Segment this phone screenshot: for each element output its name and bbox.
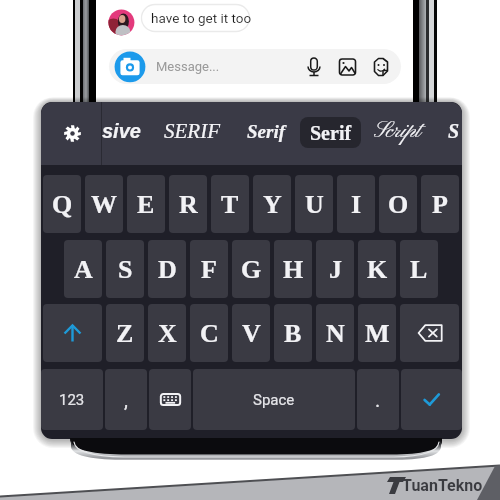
button[interactable]: V (232, 304, 270, 362)
staticText: Y (263, 190, 282, 219)
staticText: H (283, 255, 304, 284)
staticText: S (448, 120, 460, 142)
staticText: J (329, 255, 342, 284)
staticText: 123 (59, 391, 85, 409)
button[interactable]: R (169, 175, 207, 233)
staticText: W (91, 190, 117, 219)
button[interactable]: Script (374, 117, 421, 146)
button[interactable]: 123 (41, 369, 103, 430)
button[interactable]: K (358, 240, 396, 298)
staticText: Space (253, 391, 295, 409)
staticText: R (179, 190, 198, 219)
button[interactable]: A (64, 240, 102, 298)
button[interactable]: N (316, 304, 354, 362)
button[interactable]: U (295, 175, 333, 233)
staticText: D (158, 255, 177, 284)
staticText: E (137, 190, 155, 219)
button[interactable]: , (105, 369, 147, 430)
button[interactable]: Shift (43, 304, 102, 362)
staticText: L (410, 255, 428, 284)
staticText: Z (116, 319, 134, 348)
button[interactable]: M (358, 304, 396, 362)
button[interactable]: L (400, 240, 438, 298)
button[interactable]: Settings (51, 112, 93, 154)
button[interactable]: Space (193, 369, 355, 430)
staticText: M (365, 319, 390, 348)
staticText: TuanTekno (402, 476, 483, 495)
button[interactable]: Q (43, 175, 81, 233)
staticText: P (432, 190, 448, 219)
button[interactable]: S (448, 120, 460, 142)
staticText: N (326, 319, 345, 348)
staticText: , (124, 388, 128, 411)
staticText: Serif (310, 122, 352, 144)
staticText: C (200, 319, 219, 348)
button[interactable]: Switch keyboard (149, 369, 191, 430)
button[interactable]: B (274, 304, 312, 362)
button[interactable]: I (337, 175, 375, 233)
button[interactable]: Y (253, 175, 291, 233)
staticText: S (118, 255, 133, 284)
staticText: V (242, 319, 261, 348)
staticText: Serif (247, 121, 285, 142)
button[interactable]: C (190, 304, 228, 362)
button[interactable]: Backspace (400, 304, 459, 362)
button[interactable]: W (85, 175, 123, 233)
staticText: K (367, 255, 388, 284)
staticText: G (241, 255, 262, 284)
staticText: have to get it too (151, 10, 252, 26)
button[interactable]: J (316, 240, 354, 298)
button[interactable]: D (148, 240, 186, 298)
button[interactable]: T (211, 175, 249, 233)
button[interactable]: S (106, 240, 144, 298)
staticText: . (375, 388, 381, 411)
button[interactable]: Z (106, 304, 144, 362)
staticText: O (388, 190, 409, 219)
staticText: Script (374, 117, 421, 146)
staticText: Message... (156, 59, 220, 74)
staticText: U (305, 190, 324, 219)
staticText: sive (102, 120, 141, 142)
staticText: Q (52, 190, 73, 219)
button[interactable]: Serif (300, 117, 361, 148)
button[interactable]: E (127, 175, 165, 233)
button[interactable]: SERIF (164, 119, 220, 142)
button[interactable]: H (274, 240, 312, 298)
staticText: I (351, 190, 362, 219)
staticText: B (284, 319, 302, 348)
button[interactable]: X (148, 304, 186, 362)
button[interactable]: . (357, 369, 399, 430)
button[interactable]: F (190, 240, 228, 298)
staticText: X (158, 319, 177, 348)
button[interactable]: G (232, 240, 270, 298)
button[interactable]: sive (102, 120, 141, 142)
staticText: A (74, 255, 93, 284)
button[interactable]: Serif (247, 121, 285, 142)
staticText: F (201, 255, 217, 284)
button[interactable]: P (421, 175, 459, 233)
staticText: SERIF (164, 119, 220, 142)
button[interactable]: O (379, 175, 417, 233)
staticText: T (221, 190, 239, 219)
button[interactable]: Enter (401, 369, 462, 430)
